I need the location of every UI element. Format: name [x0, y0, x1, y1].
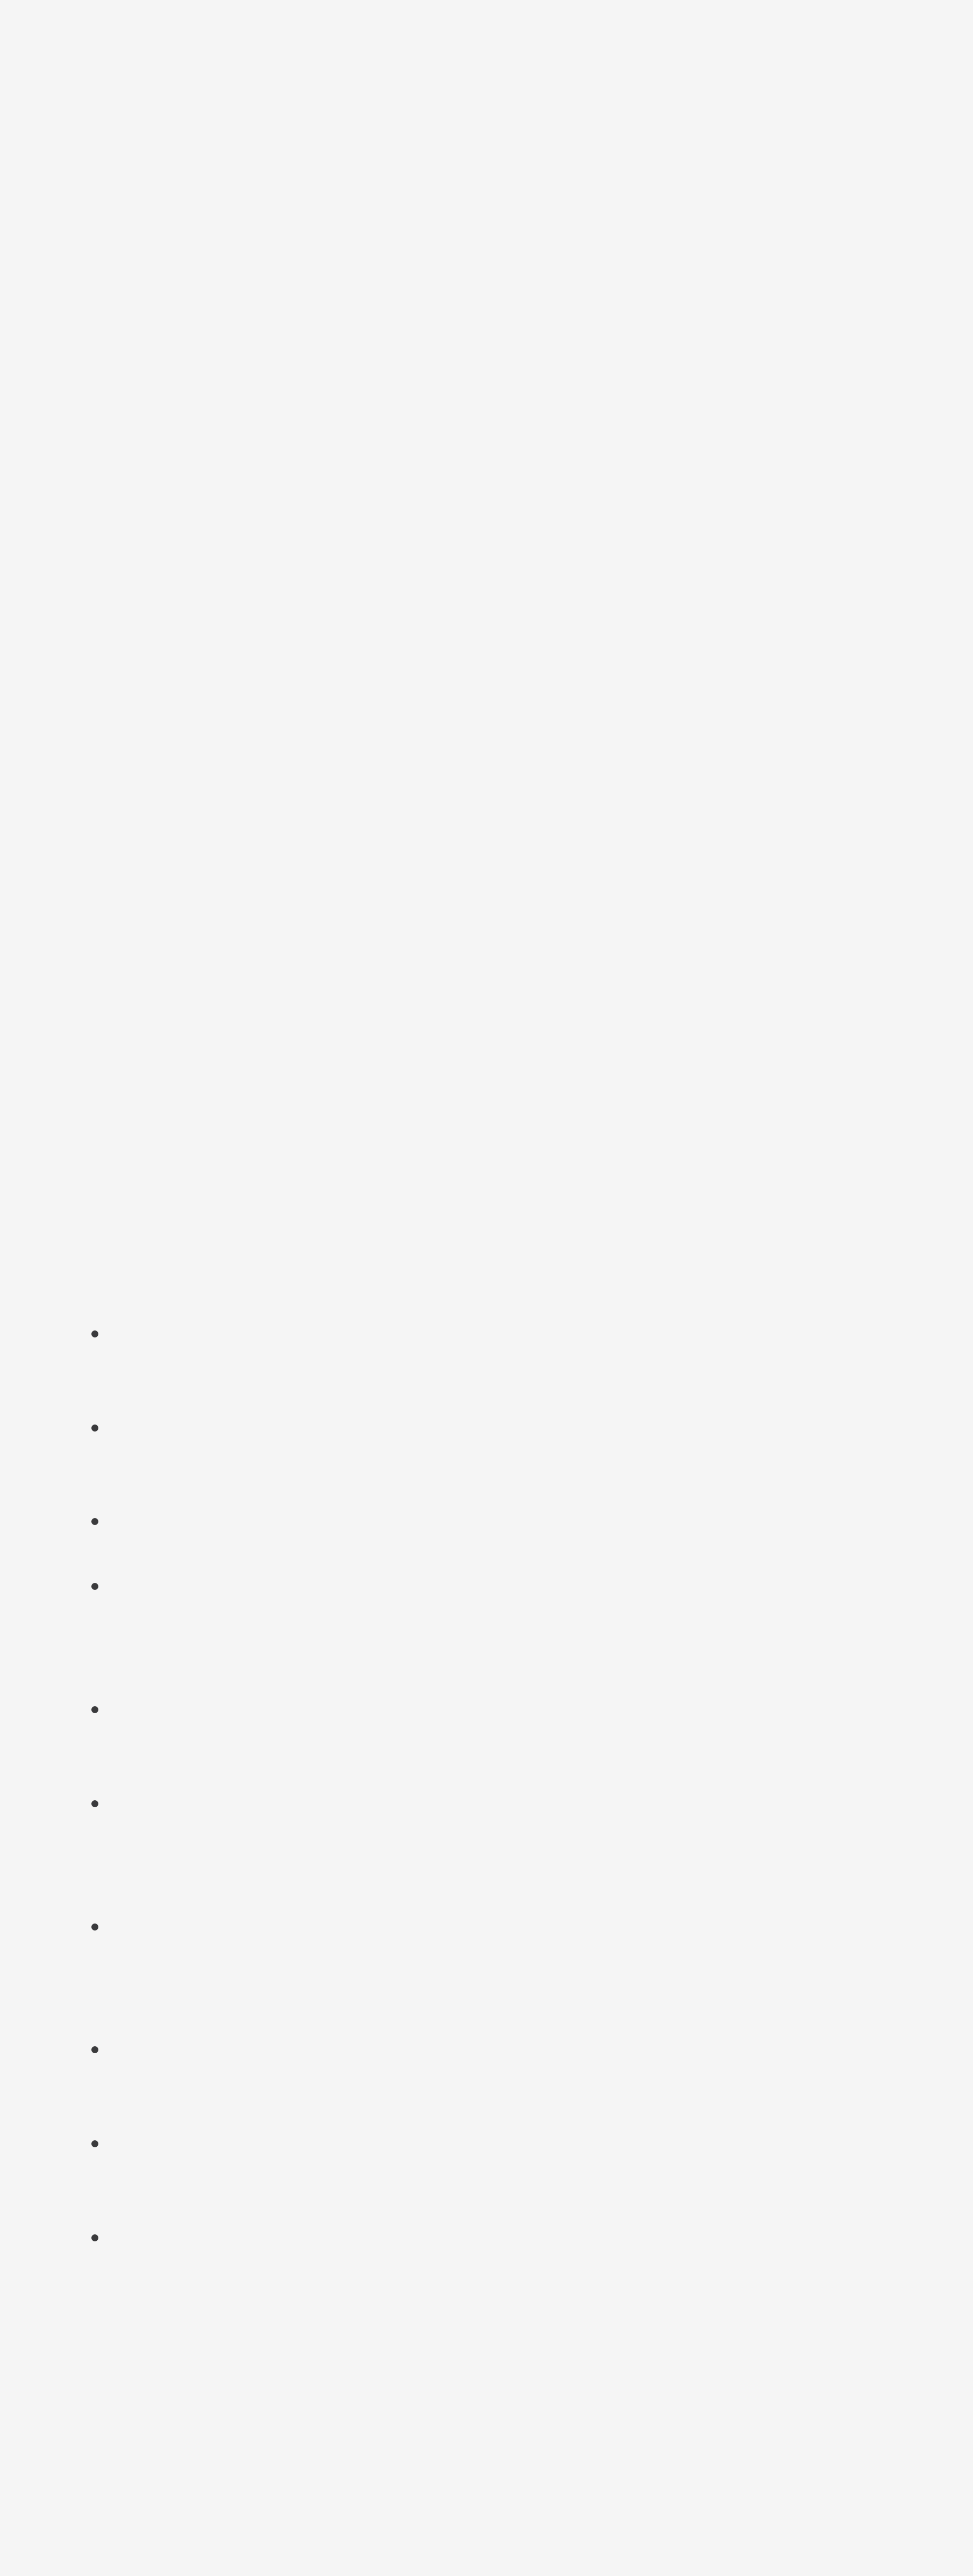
button[interactable]: Dozens of smaller fixes reported by the …	[0, 2224, 973, 2318]
button[interactable]: Offline mode keeps the last seven days o…	[0, 1572, 973, 1695]
button[interactable]: Notification grouping is smarter about b…	[0, 2035, 973, 2129]
button[interactable]: A redesigned settings screen with groupe…	[0, 1414, 973, 1507]
button[interactable]: New export options — CSV, JSON and a pri…	[0, 1789, 973, 1913]
button[interactable]: Faster cold start — the first frame now …	[0, 1320, 973, 1414]
button[interactable]: Fixed a rare crash that could happen whe…	[0, 2129, 973, 2224]
button[interactable]: The dark theme now follows the system se…	[0, 1507, 973, 1572]
button[interactable]: Improved screen-reader labels throughout…	[0, 1695, 973, 1789]
button[interactable]: Much lower memory pressure when scrollin…	[0, 1913, 973, 2035]
